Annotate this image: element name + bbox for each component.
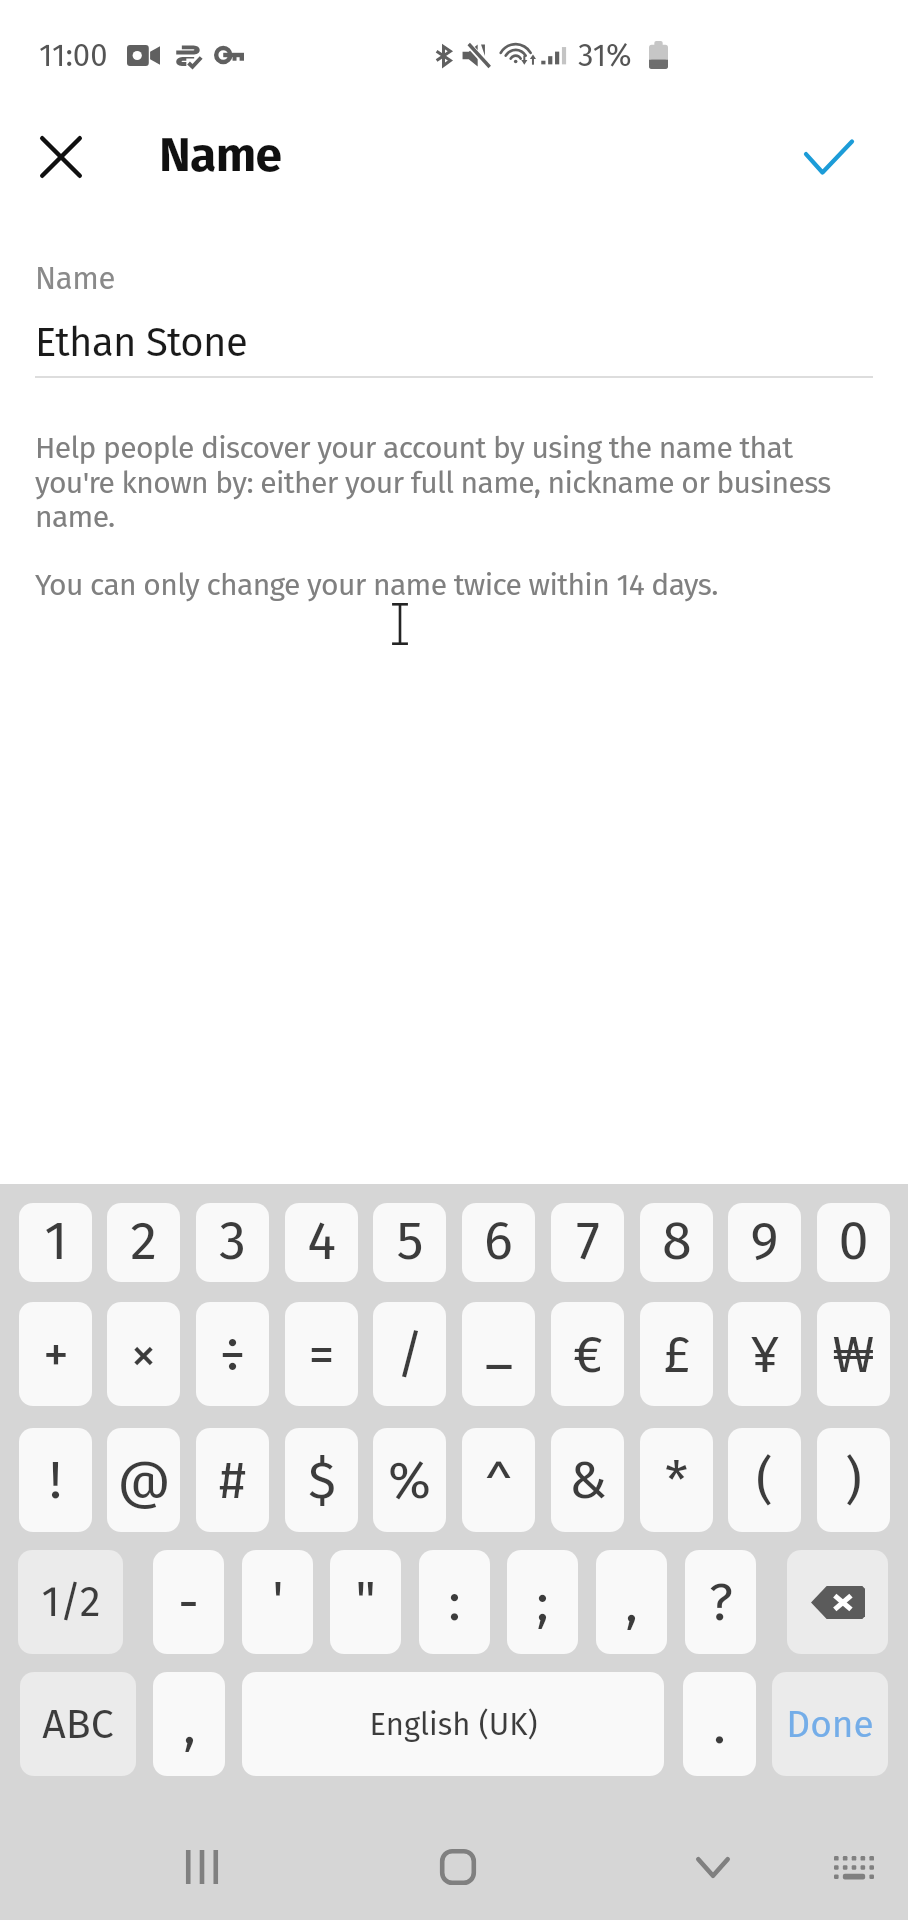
staticText: =: [308, 1323, 335, 1385]
button[interactable]: 8: [640, 1203, 713, 1282]
staticText: ÷: [219, 1323, 246, 1385]
staticText: ;: [536, 1571, 549, 1633]
button[interactable]: 6: [462, 1203, 535, 1282]
staticText: !: [49, 1449, 62, 1511]
button[interactable]: $: [285, 1428, 358, 1532]
staticText: ": [355, 1569, 376, 1631]
button[interactable]: Home: [408, 1800, 508, 1920]
button[interactable]: .: [683, 1672, 756, 1776]
staticText: (: [756, 1449, 773, 1511]
staticText: 9: [750, 1209, 779, 1274]
button[interactable]: £: [640, 1302, 713, 1406]
staticText: ¥: [751, 1323, 779, 1385]
button[interactable]: ×: [107, 1302, 180, 1406]
button[interactable]: @: [107, 1428, 180, 1532]
button[interactable]: #: [196, 1428, 269, 1532]
staticText: 31%: [578, 37, 632, 74]
staticText: Done: [786, 1702, 874, 1746]
button[interactable]: English (UK): [242, 1672, 664, 1776]
staticText: ×: [130, 1323, 157, 1385]
button[interactable]: &: [551, 1428, 624, 1532]
button[interactable]: -: [153, 1550, 224, 1654]
button[interactable]: (: [728, 1428, 801, 1532]
button[interactable]: €: [551, 1302, 624, 1406]
button[interactable]: Close: [0, 103, 122, 211]
staticText: 6: [484, 1209, 513, 1274]
staticText: ?: [709, 1571, 733, 1633]
button[interactable]: 4: [285, 1203, 358, 1282]
staticText: %: [388, 1449, 431, 1511]
button[interactable]: ÷: [196, 1302, 269, 1406]
staticText: 3: [219, 1209, 246, 1274]
staticText: $: [308, 1449, 336, 1511]
staticText: Help people discover your account by usi…: [35, 430, 850, 603]
staticText: *: [665, 1449, 688, 1511]
button[interactable]: 0: [817, 1203, 890, 1282]
button[interactable]: =: [285, 1302, 358, 1406]
staticText: 7: [576, 1209, 600, 1274]
button[interactable]: Done: [772, 1672, 888, 1776]
button[interactable]: Recents: [152, 1800, 252, 1920]
staticText: ,: [183, 1694, 196, 1756]
button[interactable]: [787, 1550, 888, 1654]
button[interactable]: :: [419, 1550, 490, 1654]
button[interactable]: Hide keyboard: [804, 1800, 904, 1920]
button[interactable]: ,: [153, 1672, 225, 1776]
staticText: 8: [662, 1209, 692, 1274]
button[interactable]: ,: [596, 1550, 667, 1654]
button[interactable]: 1/2: [18, 1550, 123, 1654]
staticText: -: [178, 1571, 199, 1633]
staticText: ^: [484, 1456, 513, 1518]
staticText: 1: [44, 1209, 68, 1274]
button[interactable]: /: [373, 1302, 446, 1406]
staticText: Ethan Stone: [35, 319, 248, 367]
button[interactable]: ₩: [817, 1302, 890, 1406]
staticText: 1/2: [41, 1577, 101, 1627]
button[interactable]: 5: [373, 1203, 446, 1282]
staticText: _: [485, 1313, 513, 1375]
button[interactable]: 1: [19, 1203, 92, 1282]
staticText: +: [43, 1323, 69, 1385]
staticText: :: [448, 1571, 461, 1633]
staticText: €: [573, 1323, 603, 1385]
staticText: 11:00: [39, 37, 108, 74]
staticText: Name: [159, 126, 282, 184]
button[interactable]: ;: [507, 1550, 578, 1654]
staticText: 4: [307, 1209, 336, 1274]
button[interactable]: ): [817, 1428, 890, 1532]
staticText: #: [219, 1449, 246, 1511]
button[interactable]: ¥: [728, 1302, 801, 1406]
staticText: ': [272, 1569, 284, 1631]
staticText: ₩: [832, 1323, 875, 1385]
button[interactable]: 3: [196, 1203, 269, 1282]
staticText: 2: [130, 1209, 157, 1274]
button[interactable]: ABC: [20, 1672, 136, 1776]
staticText: English (UK): [369, 1706, 538, 1743]
staticText: ,: [625, 1572, 638, 1634]
button[interactable]: ?: [685, 1550, 756, 1654]
staticText: @: [117, 1449, 171, 1511]
button[interactable]: ^: [462, 1428, 535, 1532]
button[interactable]: _: [462, 1302, 535, 1406]
staticText: ): [845, 1449, 862, 1511]
button[interactable]: ": [330, 1550, 401, 1654]
staticText: 0: [838, 1209, 869, 1274]
button[interactable]: 7: [551, 1203, 624, 1282]
button[interactable]: !: [19, 1428, 92, 1532]
staticText: Name: [35, 260, 115, 297]
button[interactable]: %: [373, 1428, 446, 1532]
staticText: ABC: [42, 1700, 114, 1749]
staticText: £: [663, 1323, 691, 1385]
button[interactable]: Back: [663, 1800, 763, 1920]
staticText: &: [569, 1449, 607, 1511]
button[interactable]: ': [242, 1550, 313, 1654]
staticText: .: [713, 1694, 726, 1756]
button[interactable]: *: [640, 1428, 713, 1532]
staticText: 5: [396, 1209, 424, 1274]
button[interactable]: 9: [728, 1203, 801, 1282]
staticText: /: [396, 1323, 424, 1385]
button[interactable]: +: [19, 1302, 92, 1406]
button[interactable]: Save: [777, 103, 881, 211]
button[interactable]: 2: [107, 1203, 180, 1282]
